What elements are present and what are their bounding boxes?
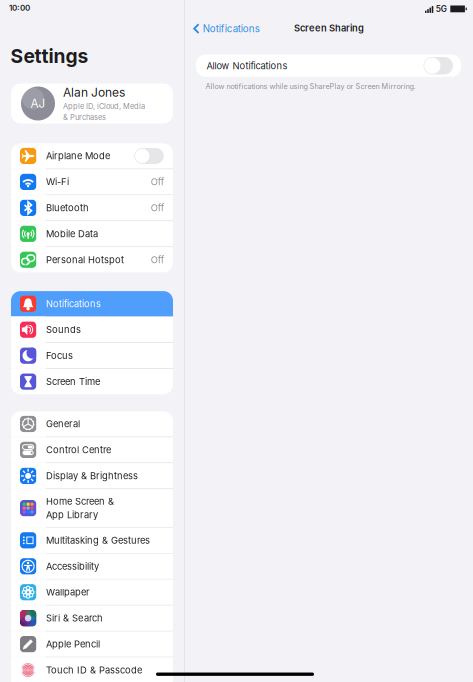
- button[interactable]: Multitasking & Gestures: [11, 528, 173, 553]
- staticText: Mobile Data: [46, 228, 98, 239]
- button[interactable]: Airplane Mode: [11, 143, 173, 169]
- staticText: Airplane Mode: [46, 150, 110, 162]
- staticText: 5G: [436, 4, 447, 14]
- staticText: Settings: [10, 44, 88, 68]
- button[interactable]: Sounds: [11, 317, 173, 342]
- staticText: Focus: [46, 350, 73, 361]
- staticText: Home Screen &: [46, 496, 114, 507]
- button[interactable]: General: [11, 411, 173, 437]
- button[interactable]: Siri & Search: [11, 605, 173, 631]
- button[interactable]: Wi-Fi: [11, 169, 173, 195]
- staticText: Multitasking & Gestures: [46, 535, 150, 546]
- button[interactable]: Display & Brightness: [11, 463, 173, 489]
- button[interactable]: Focus: [11, 343, 173, 368]
- staticText: & Purchases: [63, 113, 106, 122]
- staticText: Allow notifications while using SharePla…: [205, 82, 415, 91]
- button[interactable]: Bluetooth: [11, 195, 173, 221]
- staticText: Accessibility: [46, 561, 99, 572]
- staticText: Apple Pencil: [46, 638, 100, 650]
- staticText: Off: [151, 176, 164, 188]
- staticText: Off: [151, 202, 164, 213]
- staticText: Control Centre: [46, 444, 111, 456]
- staticText: Off: [151, 254, 164, 265]
- staticText: Notifications: [46, 298, 101, 309]
- staticText: Bluetooth: [46, 202, 89, 213]
- staticText: App Library: [46, 509, 98, 520]
- staticText: Touch ID & Passcode: [46, 664, 142, 676]
- button[interactable]: Mobile Data: [11, 221, 173, 247]
- staticText: Screen Sharing: [294, 22, 364, 34]
- staticText: Display & Brightness: [46, 470, 138, 481]
- button[interactable]: Home Screen &: [11, 489, 173, 527]
- staticText: Personal Hotspot: [46, 254, 124, 265]
- button[interactable]: AJ: [11, 83, 173, 123]
- button[interactable]: Wallpaper: [11, 579, 173, 605]
- staticText: Wi-Fi: [46, 176, 69, 188]
- staticText: Apple ID, iCloud, Media: [63, 102, 145, 111]
- staticText: General: [46, 418, 80, 430]
- button[interactable]: Touch ID & Passcode: [11, 657, 173, 682]
- staticText: Siri & Search: [46, 612, 103, 624]
- button[interactable]: Screen Time: [11, 369, 173, 394]
- button[interactable]: Notifications: [11, 291, 173, 316]
- staticText: Alan Jones: [63, 85, 125, 100]
- button[interactable]: Personal Hotspot: [11, 247, 173, 272]
- button[interactable]: Apple Pencil: [11, 631, 173, 657]
- staticText: Allow Notifications: [206, 60, 287, 71]
- button[interactable]: Accessibility: [11, 554, 173, 579]
- button[interactable]: Notifications: [193, 23, 260, 34]
- staticText: Screen Time: [46, 376, 100, 387]
- button[interactable]: Control Centre: [11, 437, 173, 463]
- staticText: Notifications: [203, 23, 260, 34]
- staticText: Wallpaper: [46, 587, 90, 598]
- staticText: 10:00: [9, 3, 30, 13]
- button[interactable]: Allow Notifications toggle: [423, 57, 453, 74]
- staticText: AJ: [30, 96, 45, 111]
- staticText: Sounds: [46, 324, 81, 335]
